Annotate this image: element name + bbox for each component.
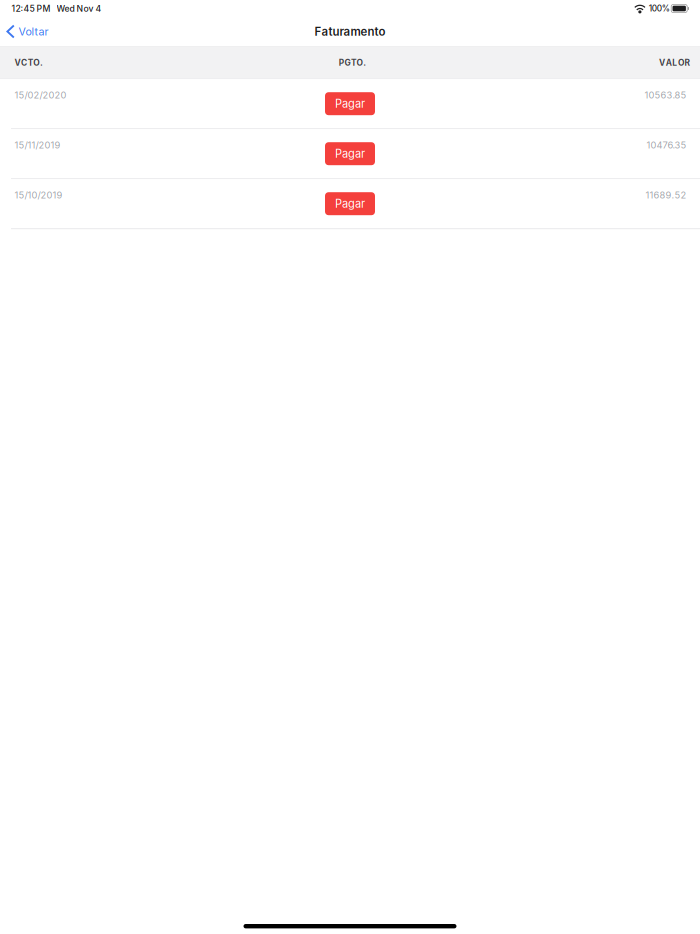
staticText: 11689.52: [645, 189, 686, 201]
staticText: VCTO.: [14, 57, 43, 68]
staticText: 10563.85: [644, 89, 686, 101]
staticText: VALOR: [659, 57, 690, 68]
button[interactable]: Pagar: [325, 142, 375, 165]
staticText: 15/10/2019: [14, 189, 62, 201]
staticText: Pagar: [335, 147, 365, 160]
staticText: 12:45 PM: [11, 3, 50, 14]
button[interactable]: Pagar: [325, 92, 375, 115]
staticText: 15/02/2020: [14, 89, 66, 101]
button[interactable]: Pagar: [325, 192, 375, 215]
staticText: PGTO.: [339, 57, 366, 68]
staticText: Wed Nov 4: [56, 3, 101, 14]
staticText: 100%: [649, 3, 670, 13]
staticText: 15/11/2019: [14, 139, 60, 151]
button[interactable]: Voltar: [0, 18, 56, 45]
staticText: Voltar: [18, 25, 48, 38]
staticText: Pagar: [335, 97, 365, 110]
staticText: 10476.35: [646, 139, 686, 151]
staticText: Pagar: [335, 197, 365, 210]
staticText: Faturamento: [314, 25, 385, 38]
